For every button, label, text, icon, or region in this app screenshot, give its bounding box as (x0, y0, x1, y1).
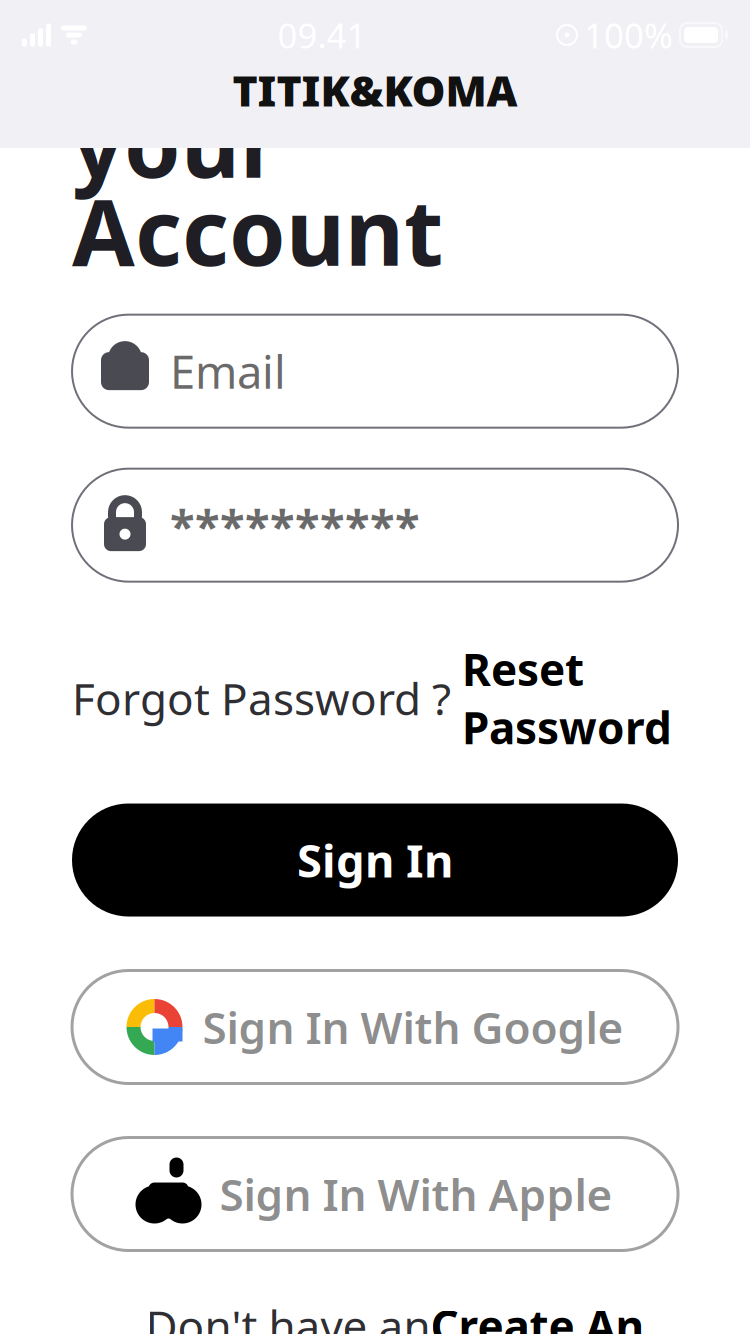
staticText: your (72, 82, 281, 203)
staticText: Forgot Password ? (72, 669, 462, 727)
staticText: Sign In (297, 830, 453, 890)
button[interactable]: Sign In With Apple (72, 1137, 678, 1250)
staticText: Sign In With Apple (219, 1165, 612, 1223)
button[interactable]: Sign In (72, 803, 678, 916)
button[interactable]: Forgot Password ? (72, 640, 672, 756)
button[interactable]: Sign In With Google (72, 970, 678, 1083)
staticText: Login to (72, 0, 443, 116)
staticText: Email (170, 341, 286, 401)
staticText: 09.41 (277, 12, 366, 58)
staticText: Don't have an account? (145, 1296, 430, 1334)
staticText: Reset Password (462, 640, 672, 756)
staticText: ********** (170, 495, 420, 555)
staticText: TITIK&KOMA (232, 62, 517, 118)
staticText: Account (72, 170, 443, 291)
staticText: Create An Account (430, 1296, 644, 1334)
staticText: Sign In With Google (202, 998, 623, 1056)
button[interactable]: Don't have an account? (72, 1296, 718, 1334)
staticText: 100% (584, 12, 673, 58)
